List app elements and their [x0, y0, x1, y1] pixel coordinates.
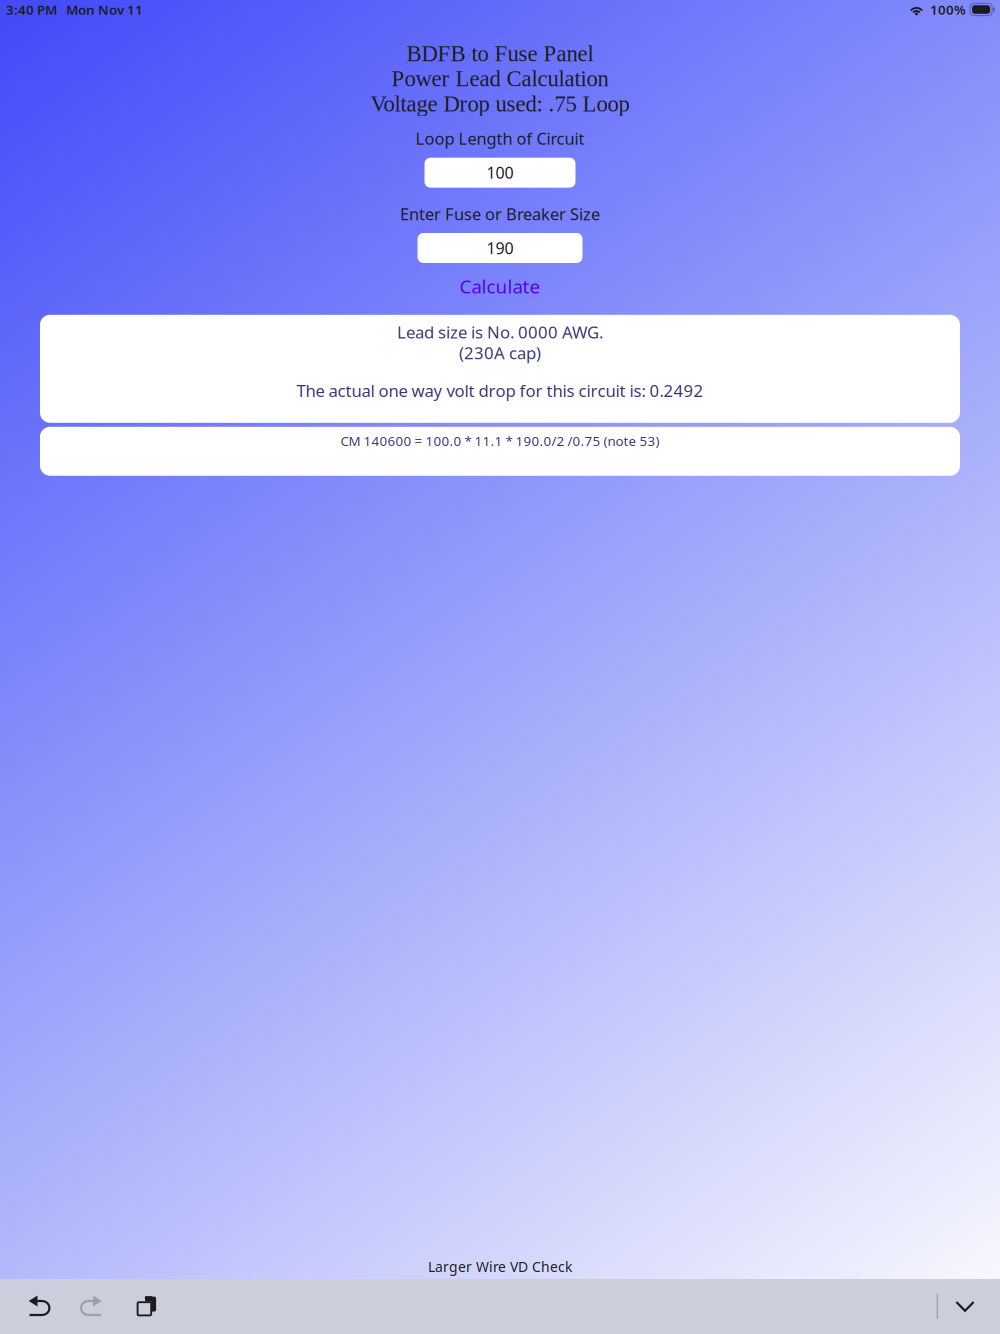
staticText: 3:40 PM [6, 1, 57, 18]
staticText: CM 140600 = 100.0 * 11.1 * 190.0/2 /0.75… [340, 432, 659, 450]
staticText: 100 [486, 162, 513, 183]
staticText: Voltage Drop used: .75 Loop [370, 91, 629, 116]
staticText: 190 [486, 237, 513, 259]
button[interactable]: Undo [15, 1282, 63, 1330]
staticText: 100% [930, 1, 966, 18]
staticText: (230A cap) [459, 341, 541, 364]
button[interactable]: Redo [63, 1282, 120, 1330]
staticText: Enter Fuse or Breaker Size [400, 203, 600, 225]
button[interactable]: Hide keyboard [938, 1282, 992, 1330]
button[interactable]: 100 [424, 158, 575, 188]
staticText: Mon Nov 11 [66, 1, 143, 18]
button[interactable]: Calculate [443, 269, 556, 304]
button[interactable]: Paste [120, 1282, 174, 1330]
staticText: Larger Wire VD Check [428, 1257, 572, 1276]
button[interactable]: 190 [417, 233, 582, 263]
staticText: Loop Length of Circuit [415, 127, 584, 150]
staticText: The actual one way volt drop for this ci… [296, 379, 703, 402]
staticText: Lead size is No. 0000 AWG. [397, 321, 603, 343]
staticText: BDFB to Fuse Panel [406, 41, 593, 66]
staticText: Power Lead Calculation [391, 66, 608, 91]
staticText: Calculate [459, 274, 540, 299]
